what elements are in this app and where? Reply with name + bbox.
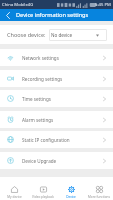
button[interactable]: More functions <box>85 177 113 200</box>
staticText: Recording settings <box>22 76 63 82</box>
button[interactable]: Time settings <box>0 90 113 107</box>
button[interactable]: Back <box>0 9 16 21</box>
button[interactable]: Network settings <box>0 49 113 66</box>
staticText: Choose device: <box>7 31 46 38</box>
staticText: More functions <box>88 195 110 199</box>
staticText: 5:45 PM <box>95 2 111 8</box>
button[interactable]: Alarm settings <box>0 111 113 128</box>
staticText: Static IP configuration <box>22 137 70 143</box>
button[interactable]: Device Upgrade <box>0 152 113 169</box>
button[interactable]: Device <box>57 177 85 200</box>
staticText: No device <box>51 32 73 38</box>
button[interactable]: No device <box>49 29 107 41</box>
button[interactable]: Static IP configuration <box>0 131 113 148</box>
button[interactable]: Video playback <box>29 177 57 200</box>
staticText: Device information settings <box>16 11 89 19</box>
button[interactable]: My device <box>0 177 29 200</box>
button[interactable]: Recording settings <box>0 70 113 87</box>
staticText: Video playback <box>32 195 54 199</box>
staticText: China Mobile4G <box>2 2 34 8</box>
staticText: Time settings <box>22 96 51 102</box>
staticText: Device Upgrade <box>22 158 57 164</box>
staticText: Device <box>66 195 76 199</box>
staticText: Network settings <box>22 55 59 61</box>
staticText: My device <box>7 195 22 199</box>
staticText: Alarm settings <box>22 117 54 123</box>
